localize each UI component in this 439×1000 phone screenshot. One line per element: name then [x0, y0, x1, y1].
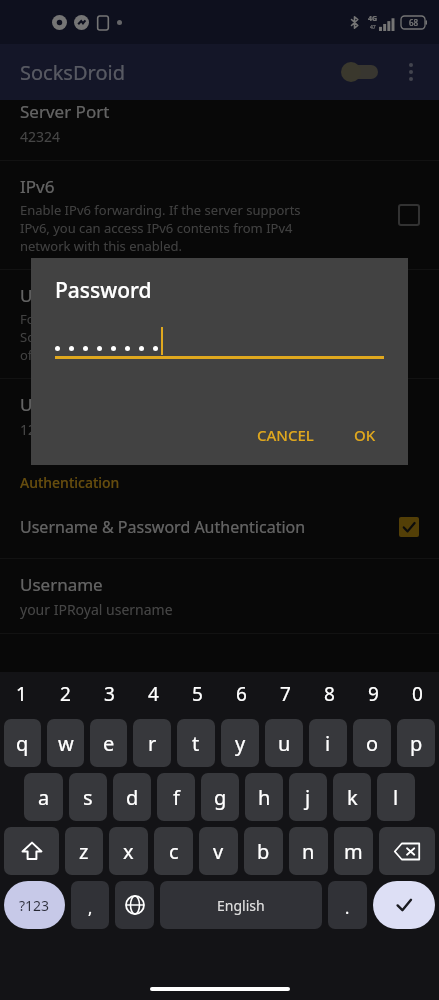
- button[interactable]: .: [328, 881, 367, 929]
- button[interactable]: 3: [87, 672, 131, 716]
- button[interactable]: u: [265, 719, 303, 767]
- staticText: a: [38, 784, 50, 811]
- staticText: j: [305, 784, 311, 811]
- button[interactable]: c: [154, 827, 193, 875]
- button[interactable]: 9: [351, 672, 395, 716]
- button[interactable]: t: [177, 719, 215, 767]
- button[interactable]: r: [133, 719, 171, 767]
- staticText: Username & Password Authentication: [20, 516, 399, 538]
- staticText: f: [173, 784, 180, 811]
- button[interactable]: h: [245, 773, 283, 821]
- button[interactable]: IPv6: [0, 161, 439, 269]
- button[interactable]: 8: [307, 672, 351, 716]
- button[interactable]: o: [353, 719, 391, 767]
- staticText: v: [213, 838, 224, 865]
- button[interactable]: s: [69, 773, 107, 821]
- staticText: OK: [354, 425, 376, 445]
- staticText: 7: [280, 681, 291, 707]
- staticText: 5: [192, 681, 203, 707]
- button[interactable]: g: [201, 773, 239, 821]
- staticText: Server Port: [20, 100, 110, 123]
- staticText: 1: [16, 681, 27, 707]
- button[interactable]: ?123: [4, 881, 65, 929]
- button[interactable]: f: [157, 773, 195, 821]
- button[interactable]: a: [24, 773, 63, 821]
- button[interactable]: z: [65, 827, 103, 875]
- staticText: SocksDroid: [20, 59, 125, 86]
- button[interactable]: q: [4, 719, 41, 767]
- button[interactable]: Checkbox: [399, 205, 419, 225]
- staticText: i: [325, 730, 331, 757]
- button[interactable]: p: [397, 719, 435, 767]
- staticText: Password: [55, 276, 152, 305]
- staticText: UDP Relay: [20, 284, 103, 307]
- button[interactable]: y: [221, 719, 259, 767]
- staticText: q: [16, 730, 29, 757]
- staticText: 6: [236, 681, 247, 707]
- staticText: UDP gateway: [20, 393, 127, 416]
- staticText: 42324: [20, 127, 61, 146]
- button[interactable]: e: [90, 719, 127, 767]
- button[interactable]: ,: [71, 881, 109, 929]
- button[interactable]: 0: [395, 672, 439, 716]
- staticText: m: [344, 838, 363, 865]
- button[interactable]: 7: [263, 672, 307, 716]
- staticText: t: [192, 730, 200, 757]
- staticText: Authentication: [20, 473, 120, 492]
- button[interactable]: UDP Relay: [0, 270, 439, 378]
- button[interactable]: Server Port: [0, 100, 439, 160]
- staticText: p: [410, 730, 423, 757]
- button[interactable]: 5: [175, 672, 219, 716]
- button[interactable]: n: [289, 827, 328, 875]
- button[interactable]: b: [244, 827, 283, 875]
- staticText: e: [103, 730, 115, 757]
- staticText: g: [214, 784, 227, 811]
- button[interactable]: OK: [346, 419, 384, 451]
- staticText: 47: [370, 24, 376, 31]
- button[interactable]: Backspace: [379, 827, 435, 875]
- staticText: o: [366, 730, 379, 757]
- staticText: Forward UDP traffic through SOCKS5 serve…: [20, 310, 288, 364]
- button[interactable]: d: [113, 773, 151, 821]
- staticText: IPv6: [20, 175, 55, 198]
- staticText: r: [148, 730, 157, 757]
- button[interactable]: 6: [219, 672, 263, 716]
- button[interactable]: Username & Password Authentication: [0, 506, 439, 548]
- button[interactable]: v: [199, 827, 238, 875]
- button[interactable]: i: [309, 719, 347, 767]
- button[interactable]: l: [377, 773, 415, 821]
- staticText: 3: [104, 681, 115, 707]
- button[interactable]: CANCEL: [249, 419, 322, 451]
- staticText: ,: [88, 897, 93, 919]
- button[interactable]: j: [289, 773, 327, 821]
- button[interactable]: Shift: [4, 827, 59, 875]
- button[interactable]: Checkbox: [399, 517, 419, 537]
- button[interactable]: English: [160, 881, 322, 929]
- button[interactable]: m: [334, 827, 373, 875]
- button[interactable]: More options: [387, 48, 435, 96]
- staticText: 9: [368, 681, 379, 707]
- staticText: l: [393, 784, 399, 811]
- button[interactable]: 1: [0, 672, 43, 716]
- staticText: ?123: [19, 896, 50, 915]
- staticText: c: [169, 838, 179, 865]
- button[interactable]: Toggle proxy: [335, 48, 387, 96]
- button[interactable]: Username: [0, 559, 439, 633]
- staticText: 4G: [368, 14, 378, 24]
- staticText: 68: [409, 17, 419, 28]
- staticText: b: [257, 838, 270, 865]
- button[interactable]: 4: [131, 672, 175, 716]
- button[interactable]: 2: [43, 672, 87, 716]
- button[interactable]: Change language: [115, 881, 154, 929]
- button[interactable]: UDP gateway: [0, 379, 439, 453]
- staticText: u: [278, 730, 291, 757]
- button[interactable]: k: [333, 773, 371, 821]
- button[interactable]: x: [109, 827, 148, 875]
- staticText: s: [83, 784, 93, 811]
- staticText: d: [126, 784, 139, 811]
- staticText: .: [345, 897, 350, 919]
- button[interactable]: Done: [373, 881, 435, 929]
- staticText: h: [258, 784, 271, 811]
- staticText: w: [58, 730, 74, 757]
- button[interactable]: w: [47, 719, 84, 767]
